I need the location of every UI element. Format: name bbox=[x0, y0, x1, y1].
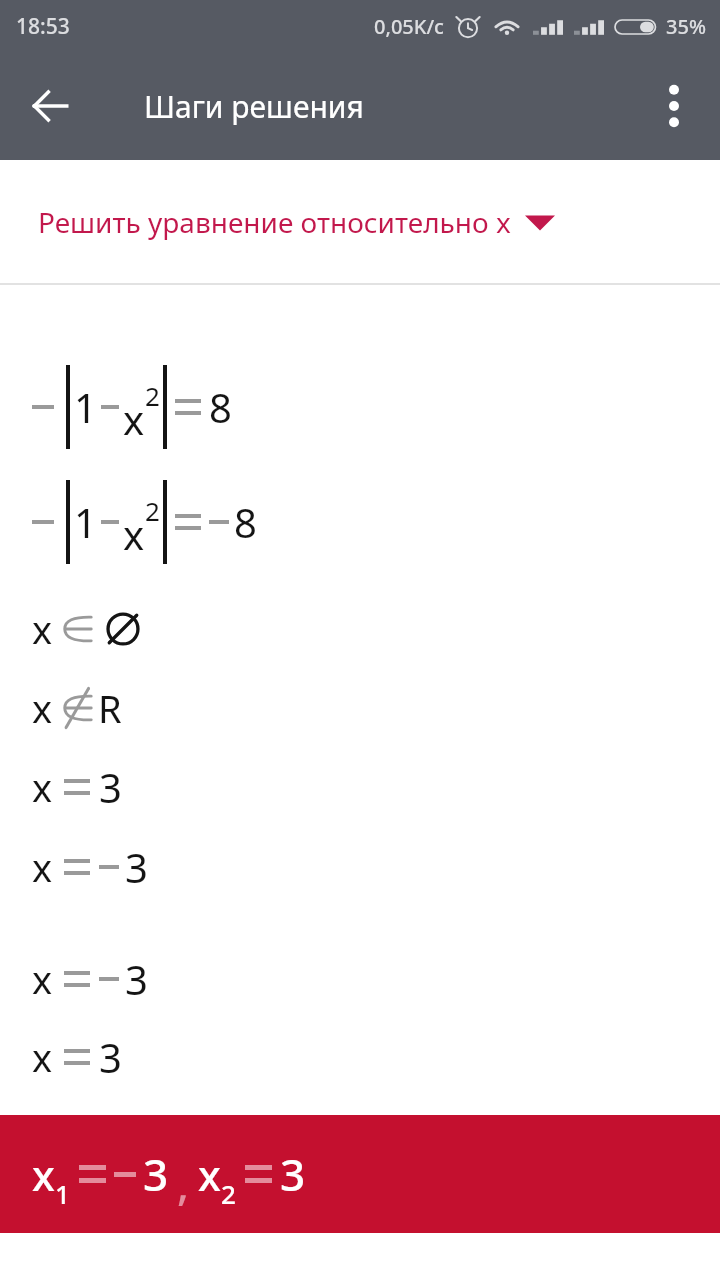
staticText: 1 bbox=[74, 495, 97, 549]
staticText: x bbox=[32, 603, 53, 655]
staticText: , bbox=[177, 1153, 190, 1213]
staticText: 3 bbox=[125, 840, 148, 894]
staticText: 3 bbox=[280, 1144, 306, 1204]
button[interactable]: Ещё bbox=[646, 78, 702, 134]
staticText: x bbox=[123, 507, 145, 561]
staticText: 2 bbox=[145, 378, 160, 413]
button[interactable]: Назад bbox=[18, 74, 82, 138]
button[interactable]: x bbox=[0, 1115, 720, 1233]
staticText: x bbox=[32, 1031, 53, 1083]
staticText: x bbox=[32, 1146, 55, 1203]
staticText: x bbox=[32, 953, 53, 1005]
staticText: 8 bbox=[234, 495, 257, 549]
staticText: x bbox=[32, 841, 53, 893]
staticText: 3 bbox=[125, 952, 148, 1006]
button[interactable]: Решить уравнение относительно x bbox=[0, 160, 720, 283]
staticText: x bbox=[32, 682, 53, 734]
staticText: x bbox=[198, 1146, 221, 1203]
staticText: x bbox=[32, 761, 53, 813]
staticText: Шаги решения bbox=[144, 86, 364, 127]
staticText: 3 bbox=[143, 1144, 169, 1204]
staticText: 2 bbox=[145, 493, 160, 528]
staticText: 0,05K/c bbox=[374, 13, 444, 40]
staticText: 35% bbox=[666, 13, 706, 40]
staticText: 2 bbox=[221, 1176, 236, 1211]
staticText: x bbox=[123, 392, 145, 446]
staticText: 18:53 bbox=[16, 12, 70, 41]
staticText: Решить уравнение относительно x bbox=[38, 203, 511, 241]
staticText: 3 bbox=[99, 1030, 122, 1084]
staticText: R bbox=[98, 682, 122, 734]
staticText: 8 bbox=[209, 380, 232, 434]
staticText: 3 bbox=[99, 760, 122, 814]
staticText: 1 bbox=[74, 380, 97, 434]
staticText: 1 bbox=[55, 1176, 70, 1211]
